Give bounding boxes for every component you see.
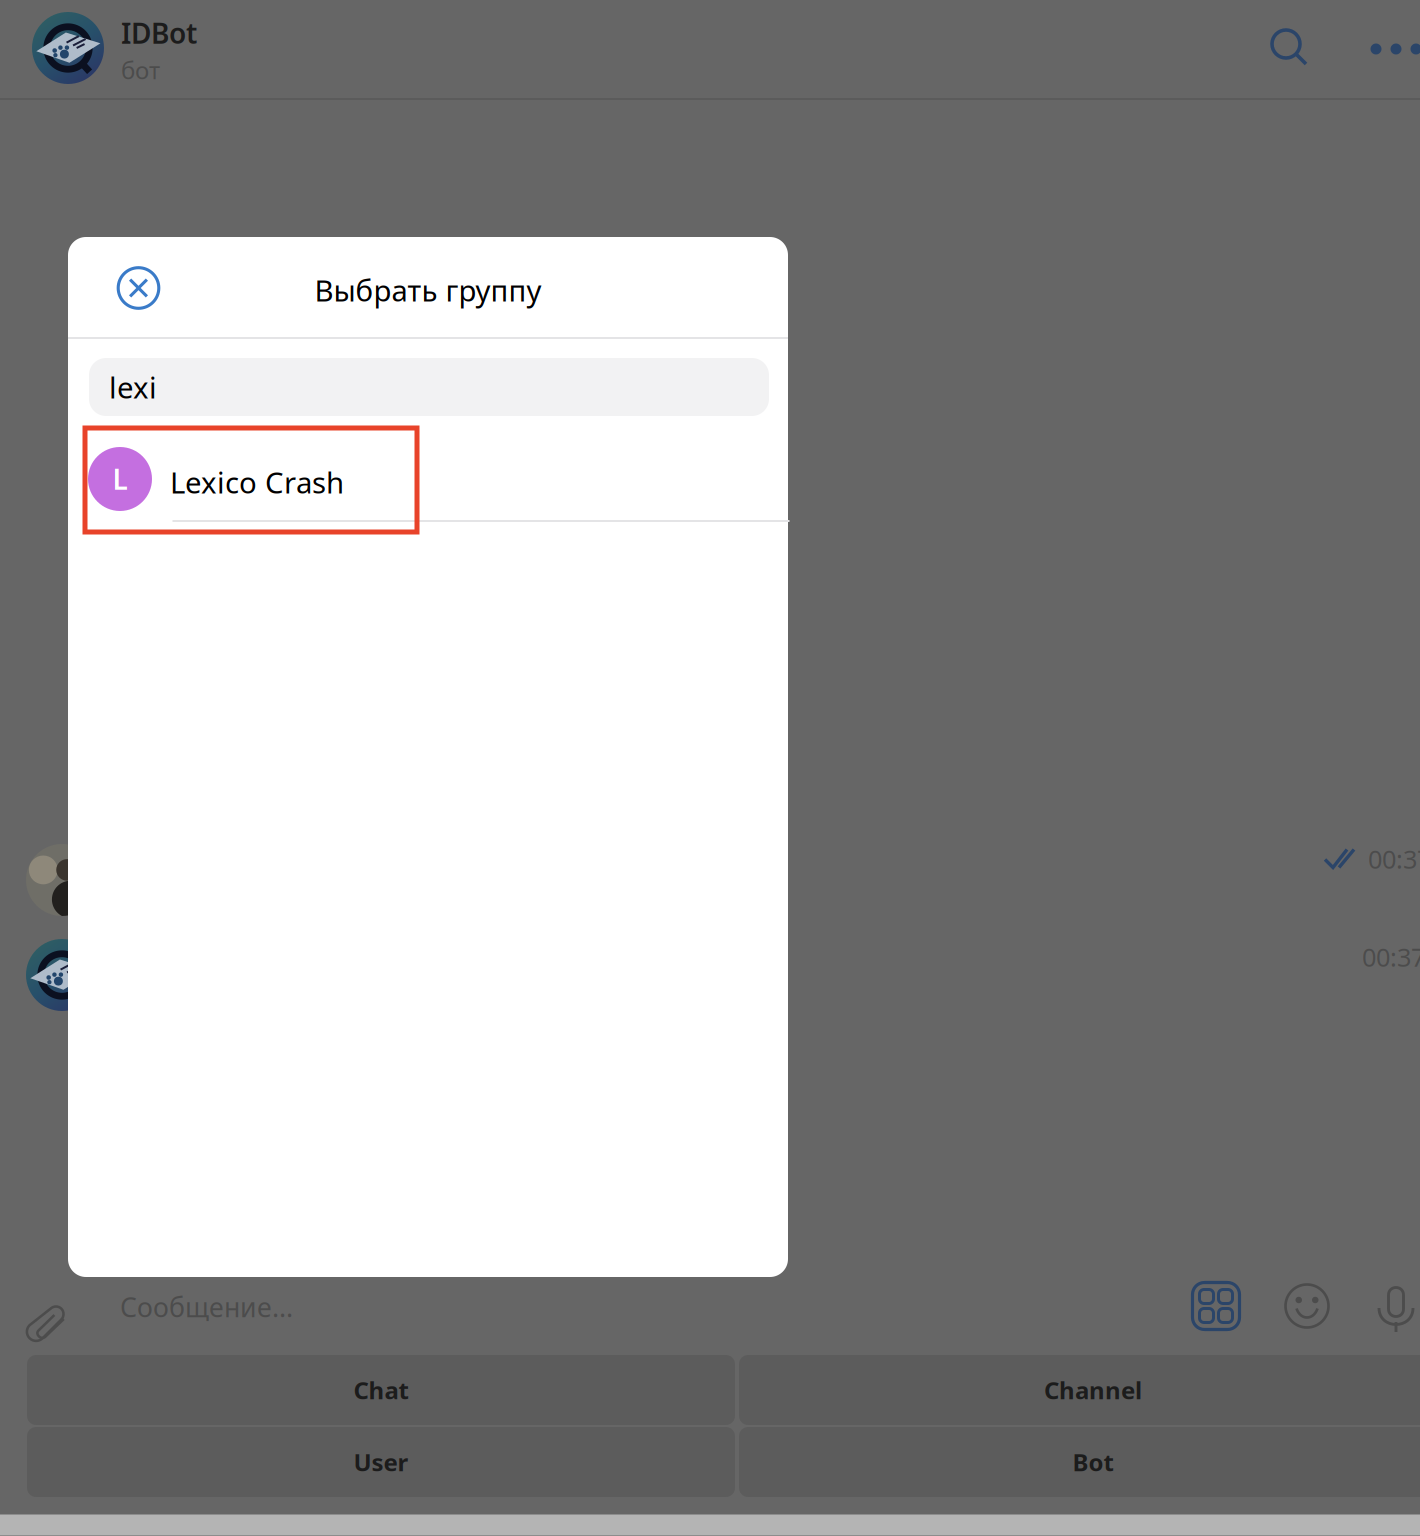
staticText: 00:37 [1368,842,1420,876]
staticText: Сообщение... [120,1289,293,1325]
button[interactable]: Chat [27,1355,735,1425]
button[interactable]: Channel [739,1355,1420,1425]
button[interactable]: More options [1352,5,1420,93]
staticText: L [112,460,127,498]
button[interactable]: Close [100,250,176,326]
staticText: 00:37 [1362,940,1420,974]
staticText: Channel [1044,1374,1142,1406]
staticText: lexi [109,367,157,406]
staticText: Lexico Crash [170,462,344,501]
staticText: Выбрать группу [314,270,541,309]
button[interactable]: User [27,1427,735,1497]
button[interactable]: Emoji [1264,1263,1350,1349]
button[interactable]: Search [1246,4,1334,92]
button[interactable]: L [68,428,788,520]
staticText: User [353,1446,408,1478]
staticText: Chat [353,1374,408,1406]
staticText: IDBot [121,14,197,52]
button[interactable]: Bot keyboard [1173,1263,1259,1349]
button[interactable]: Record voice message [1353,1265,1420,1351]
button[interactable]: Bot [739,1427,1420,1497]
staticText: бот [121,54,160,86]
staticText: Bot [1072,1446,1113,1478]
button[interactable]: Attach file [3,1280,93,1370]
